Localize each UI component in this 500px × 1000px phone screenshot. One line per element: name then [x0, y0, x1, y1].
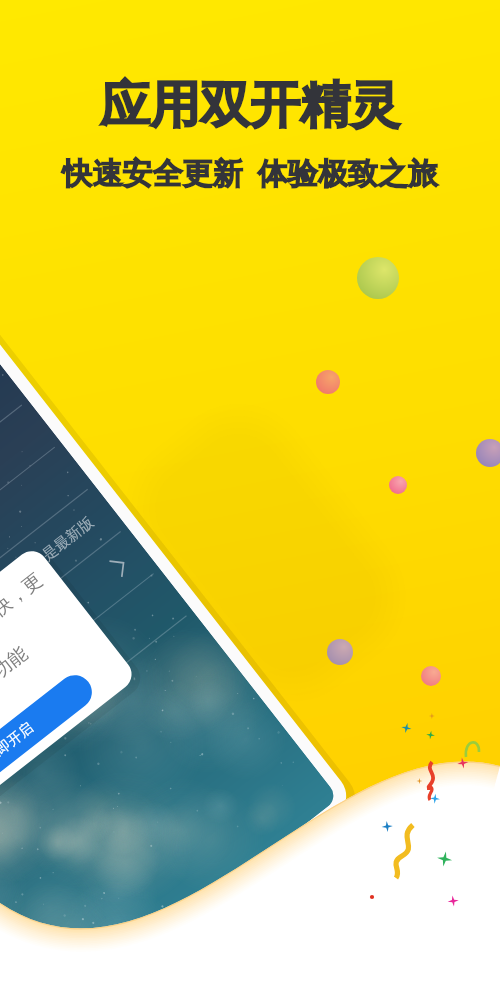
staticText: 应用双开精灵	[100, 74, 400, 137]
staticText: 快速安全更新 体验极致之旅	[62, 152, 438, 193]
